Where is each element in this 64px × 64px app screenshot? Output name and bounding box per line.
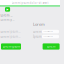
staticText: Lorem ipsum dolor [0,18,14,22]
staticText: Lorem ipsum [43,31,52,32]
button[interactable]: Lorem ipsum [1,43,21,50]
staticText: Lorem [33,30,41,33]
staticText: Lorem [33,21,45,27]
button[interactable]: Lorem [43,43,60,50]
staticText: ipsum dolor sit [10,30,20,33]
staticText: Lorem [0,30,8,33]
staticText: Lorem [47,45,55,48]
staticText: Lorem ipsum [2,45,19,48]
staticText: Lorem [0,35,8,38]
staticText: Lorem ipsum [0,14,13,17]
staticText: ▶ [6,8,8,11]
staticText: Ipsum [33,35,41,38]
staticText: ipsum dolor sit [10,35,20,38]
staticText: Lorem ipsum dolor sit amet [11,1,48,5]
staticText: Lorem ipsum [43,36,52,37]
